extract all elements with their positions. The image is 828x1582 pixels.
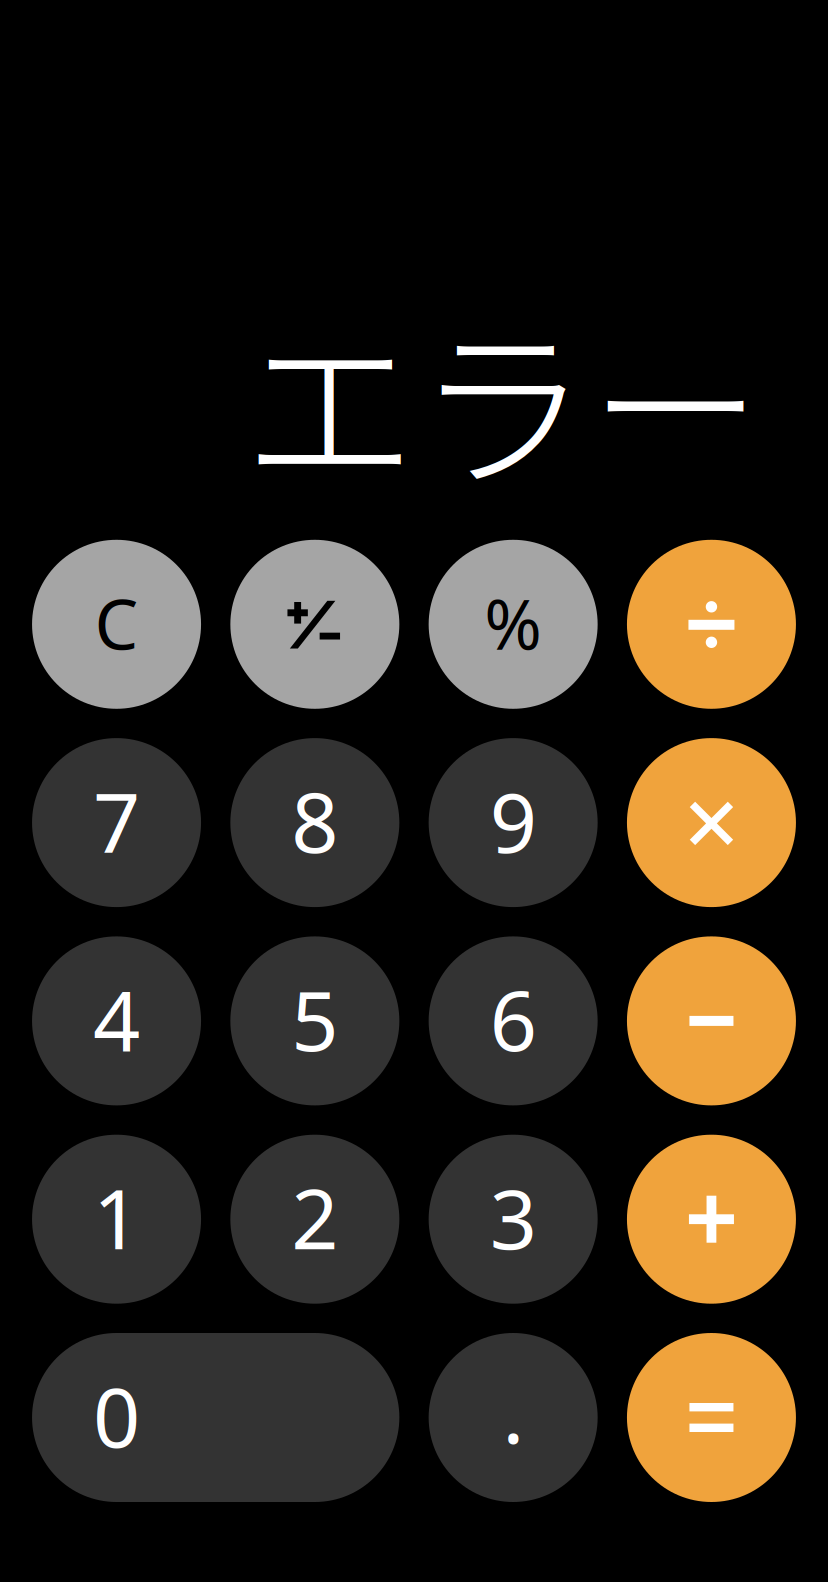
button[interactable]: Decimal point	[429, 1333, 598, 1502]
button[interactable]: Clear	[32, 540, 201, 709]
staticText: 7	[93, 766, 140, 875]
button[interactable]: 6	[429, 936, 598, 1105]
button[interactable]: 2	[230, 1135, 399, 1304]
button[interactable]: 3	[429, 1135, 598, 1304]
staticText: 5	[291, 964, 338, 1074]
button[interactable]: Divide	[627, 540, 796, 709]
staticText: 3	[490, 1162, 537, 1272]
staticText: エラー	[243, 272, 762, 523]
button[interactable]: 4	[32, 936, 201, 1105]
button[interactable]: 8	[230, 738, 399, 907]
button[interactable]: 5	[230, 936, 399, 1105]
button[interactable]: Percent	[429, 540, 598, 709]
button[interactable]: Subtract	[627, 936, 796, 1105]
staticText: C	[95, 577, 139, 669]
button[interactable]: Plus minus	[230, 540, 399, 709]
staticText: 0	[93, 1361, 140, 1470]
staticText: 2	[291, 1162, 338, 1272]
button[interactable]: Multiply	[627, 738, 796, 907]
staticText: 4	[93, 964, 140, 1074]
button[interactable]: 0	[32, 1333, 399, 1502]
button[interactable]: 7	[32, 738, 201, 907]
button[interactable]: Add	[627, 1135, 796, 1304]
button[interactable]: 9	[429, 738, 598, 907]
button[interactable]: 1	[32, 1135, 201, 1304]
staticText: 6	[490, 964, 537, 1074]
staticText: .	[502, 1357, 524, 1466]
staticText: 9	[490, 766, 537, 875]
button[interactable]: Equals	[627, 1333, 796, 1502]
staticText: %	[484, 577, 542, 669]
staticText: 1	[93, 1162, 140, 1272]
staticText: 8	[291, 766, 338, 875]
